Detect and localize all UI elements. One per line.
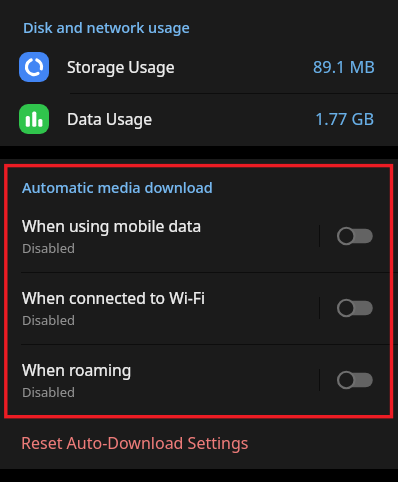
staticText: Disabled [22, 383, 76, 401]
staticText: When roaming [22, 359, 132, 380]
button[interactable]: When using mobile data [0, 200, 398, 272]
staticText: Disk and network usage [23, 17, 190, 37]
button[interactable]: When roaming [0, 344, 398, 416]
staticText: When using mobile data [22, 215, 202, 236]
staticText: Automatic media download [22, 177, 213, 197]
staticText: Disabled [22, 239, 76, 257]
staticText: 1.77 GB [315, 108, 375, 130]
button[interactable]: Toggle off [335, 296, 377, 320]
staticText: Disabled [22, 311, 76, 329]
staticText: Reset Auto-Download Settings [21, 432, 249, 454]
staticText: Data Usage [67, 108, 153, 129]
button[interactable]: Toggle off [335, 224, 377, 248]
button[interactable]: Storage Usage [0, 41, 398, 93]
button[interactable]: Toggle off [335, 368, 377, 392]
button[interactable]: Data Usage [0, 93, 398, 145]
staticText: Storage Usage [67, 56, 175, 77]
button[interactable]: Reset Auto-Download Settings [0, 416, 398, 469]
staticText: When connected to Wi-Fi [22, 287, 206, 308]
staticText: 89.1 MB [313, 56, 375, 78]
button[interactable]: When connected to Wi-Fi [0, 272, 398, 344]
